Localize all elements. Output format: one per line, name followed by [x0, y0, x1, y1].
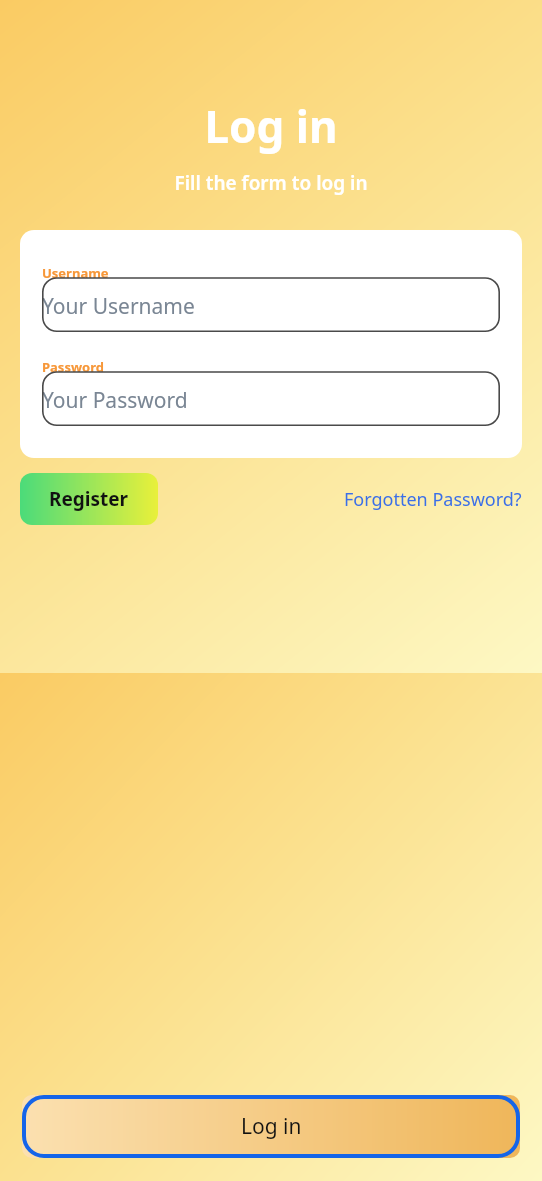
staticText: Your Password [42, 386, 188, 415]
staticText: Register [49, 486, 129, 512]
button[interactable]: Register [20, 473, 158, 525]
staticText: Log in [0, 96, 542, 156]
button[interactable]: Your Password [42, 386, 500, 426]
button[interactable]: Your Username [42, 292, 500, 332]
staticText: Your Username [42, 292, 195, 321]
staticText: Username [42, 264, 109, 282]
staticText: Forgotten Password? [344, 487, 522, 512]
button[interactable]: Forgotten Password? [344, 481, 522, 518]
staticText: Log in [241, 1112, 302, 1141]
staticText: Password [42, 358, 104, 376]
staticText: Fill the form to log in [0, 170, 542, 196]
button[interactable]: Log in [22, 1095, 520, 1158]
